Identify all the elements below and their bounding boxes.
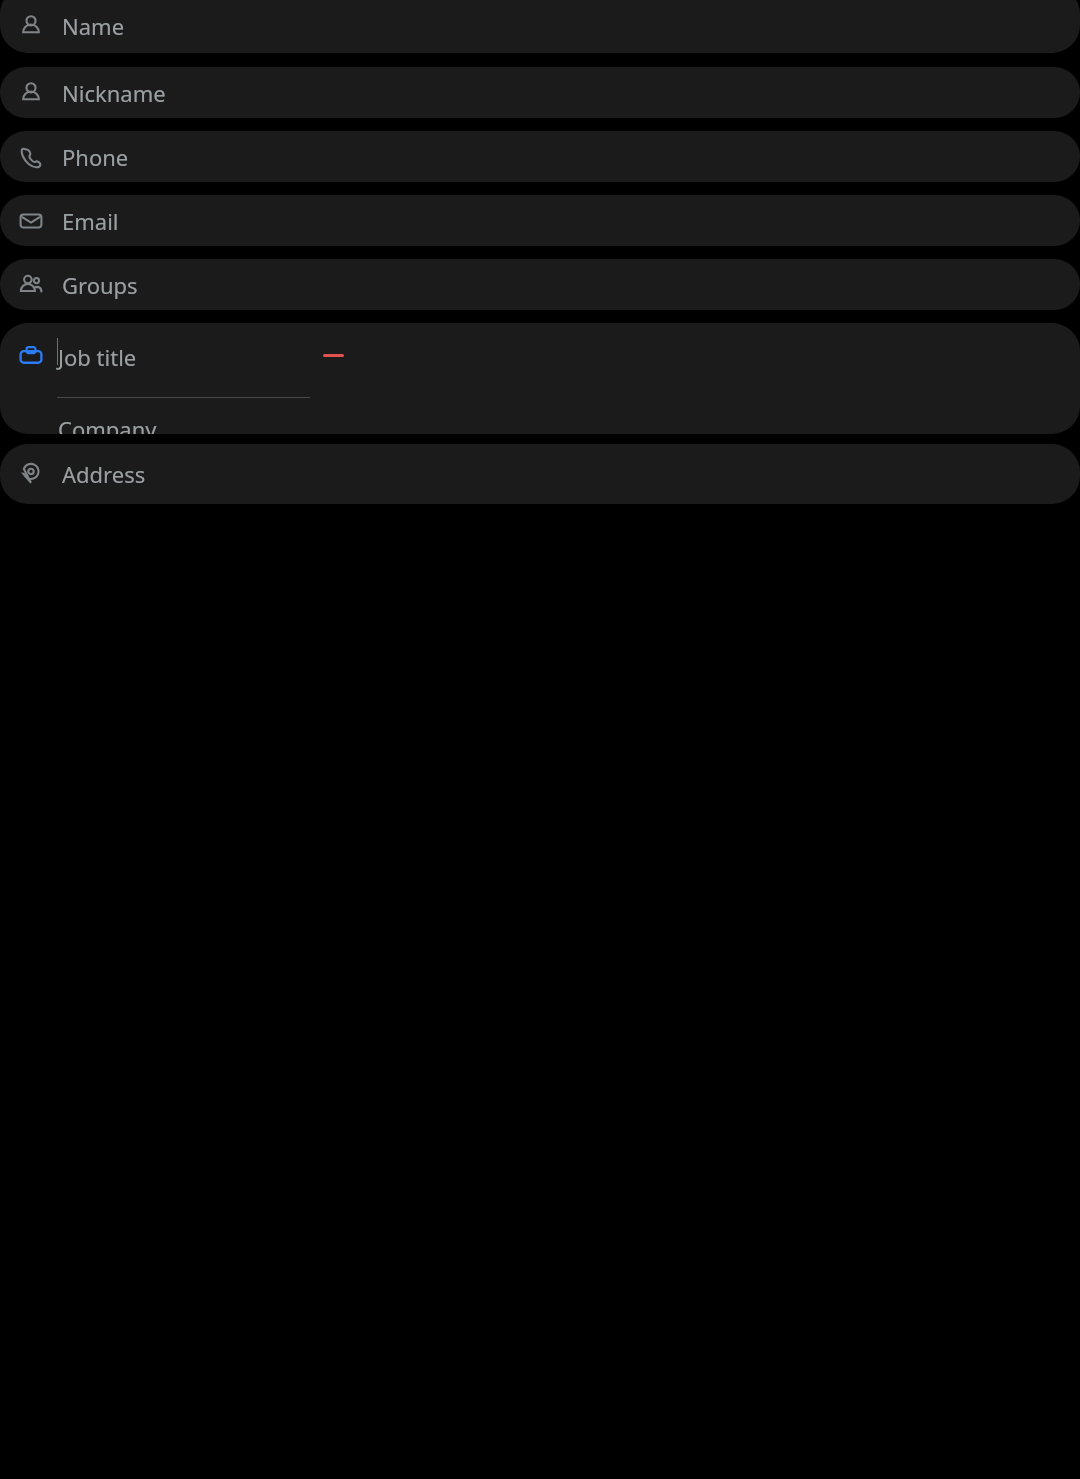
staticText: Phone: [62, 142, 129, 172]
staticText: Email: [62, 206, 119, 236]
staticText: Groups: [62, 270, 138, 300]
other: Name: [18, 13, 44, 39]
other: Email: [18, 208, 44, 234]
button[interactable]: Phone: [0, 131, 1080, 182]
button[interactable]: Company: [58, 414, 157, 434]
other: Groups: [18, 272, 44, 298]
button[interactable]: Email: [0, 195, 1080, 246]
staticText: Address: [62, 459, 146, 489]
staticText: Nickname: [62, 78, 166, 108]
staticText: Job title: [58, 342, 137, 372]
staticText: Name: [62, 11, 125, 41]
other: Nickname: [18, 80, 44, 106]
other: Address: [18, 461, 44, 487]
button[interactable]: Name: [0, 0, 1080, 53]
other: Phone: [18, 144, 44, 170]
button[interactable]: Organization: [0, 323, 1080, 434]
other: Organization: [18, 343, 44, 369]
button[interactable]: Nickname: [0, 67, 1080, 118]
button[interactable]: Address: [0, 444, 1080, 504]
button[interactable]: Groups: [0, 259, 1080, 310]
button[interactable]: Remove organization: [320, 337, 346, 373]
